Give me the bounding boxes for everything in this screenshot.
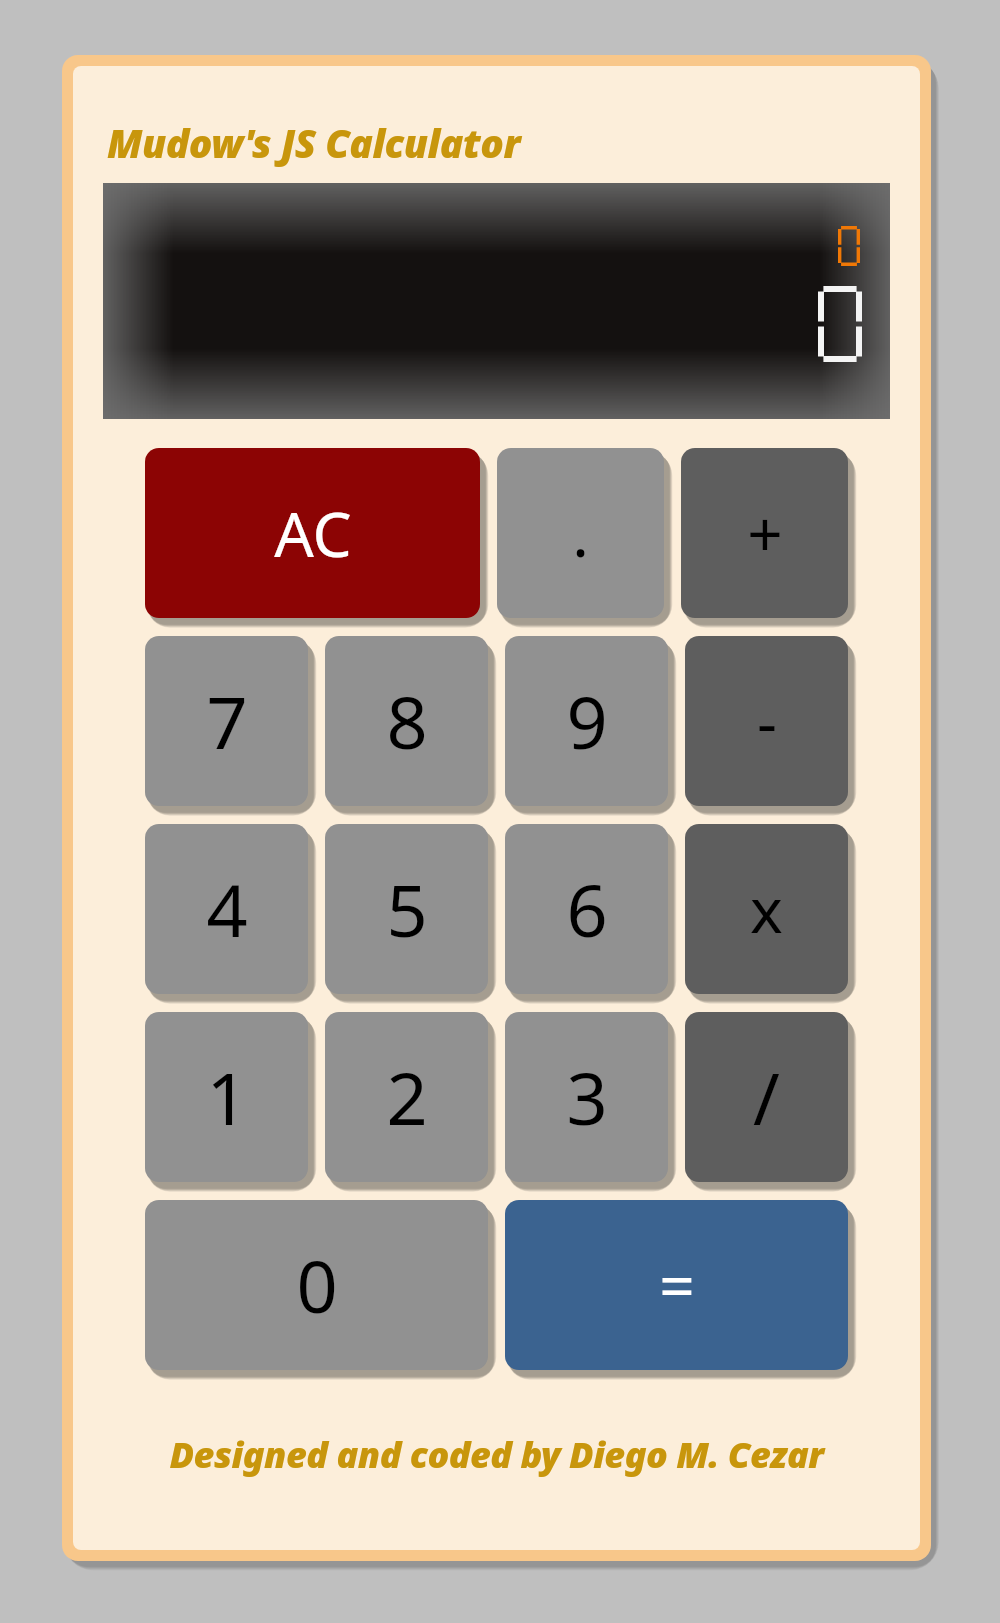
button[interactable]: =: [505, 1200, 848, 1370]
staticText: Mudow's JS Calculator: [107, 116, 520, 169]
button[interactable]: 0: [145, 1200, 488, 1370]
staticText: 0: [296, 1236, 338, 1334]
staticText: AC: [274, 491, 352, 575]
staticText: Designed and coded by Diego M. Cezar: [73, 1430, 920, 1479]
button[interactable]: 1: [145, 1012, 308, 1182]
button[interactable]: 8: [325, 636, 488, 806]
staticText: /: [753, 1048, 780, 1146]
staticText: .: [572, 491, 589, 575]
staticText: 4: [206, 860, 248, 958]
button[interactable]: .: [497, 448, 664, 618]
staticText: 8: [386, 672, 428, 770]
button[interactable]: +: [681, 448, 848, 618]
staticText: -: [757, 679, 777, 763]
button[interactable]: -: [685, 636, 848, 806]
button[interactable]: 3: [505, 1012, 668, 1182]
button[interactable]: /: [685, 1012, 848, 1182]
button[interactable]: 9: [505, 636, 668, 806]
staticText: 7: [206, 672, 248, 770]
button[interactable]: x: [685, 824, 848, 994]
button[interactable]: 2: [325, 1012, 488, 1182]
staticText: 2: [386, 1048, 428, 1146]
staticText: +: [747, 491, 783, 575]
button[interactable]: 7: [145, 636, 308, 806]
staticText: 1: [206, 1048, 248, 1146]
button[interactable]: 4: [145, 824, 308, 994]
staticText: 5: [386, 860, 428, 958]
staticText: x: [750, 867, 783, 951]
button[interactable]: AC: [145, 448, 480, 618]
staticText: =: [659, 1243, 695, 1327]
button[interactable]: 6: [505, 824, 668, 994]
staticText: 9: [566, 672, 608, 770]
staticText: 3: [566, 1048, 608, 1146]
button[interactable]: 5: [325, 824, 488, 994]
staticText: 6: [566, 860, 608, 958]
